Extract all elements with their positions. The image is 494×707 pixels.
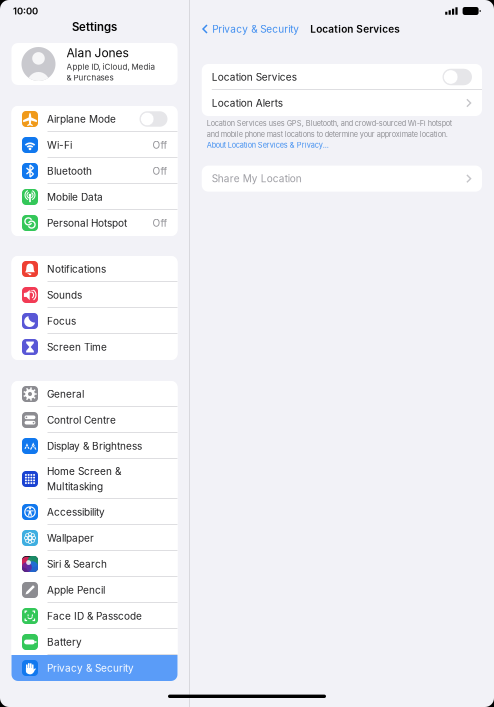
button[interactable]: Wi-Fi [11,132,177,158]
staticText: Display & Brightness [47,440,142,452]
button[interactable]: Privacy & Security [202,22,299,36]
staticText: Airplane Mode [47,113,116,125]
staticText: Control Centre [47,414,116,426]
button[interactable]: Sounds [11,282,177,308]
button[interactable]: Home Screen & [11,459,177,499]
staticText: Privacy & Security [212,23,299,35]
button[interactable]: Siri & Search [11,551,177,577]
button[interactable]: Battery [11,629,177,655]
staticText: Share My Location [212,173,302,185]
staticText: Notifications [47,263,106,275]
button[interactable]: Screen Time [11,334,177,360]
staticText: Off [152,217,167,229]
staticText: Location Alerts [212,97,283,109]
staticText: Mobile Data [47,191,103,203]
staticText: Apple Pencil [47,584,105,596]
staticText: Face ID & Passcode [47,610,142,622]
button[interactable]: Notifications [11,256,177,282]
button[interactable]: Wallpaper [11,525,177,551]
staticText: Focus [47,315,76,327]
staticText: Alan Jones [66,46,128,60]
button[interactable]: Bluetooth [11,158,177,184]
staticText: General [47,388,84,400]
staticText: Apple ID, iCloud, Media [66,62,154,72]
button[interactable]: Display & Brightness [11,433,177,459]
staticText: Sounds [47,289,82,301]
staticText: Wi-Fi [47,139,72,151]
staticText: Bluetooth [47,165,92,177]
staticText: Screen Time [47,341,107,353]
button[interactable]: General [11,381,177,407]
staticText: Wallpaper [47,532,94,544]
staticText: Personal Hotspot [47,217,127,229]
button[interactable]: Airplane Mode [11,106,177,132]
staticText: 10:00 [13,5,38,17]
button[interactable]: Share My Location [202,166,482,192]
button[interactable]: About Location Services & Privacy... [207,141,329,150]
staticText: About Location Services & Privacy... [207,141,329,150]
button[interactable]: Face ID & Passcode [11,603,177,629]
staticText: Privacy & Security [47,662,134,674]
staticText: Location Services [310,23,399,35]
staticText: Accessibility [47,506,105,518]
staticText: Multitasking [47,480,103,493]
button[interactable]: Control Centre [11,407,177,433]
staticText: Siri & Search [47,558,107,570]
button[interactable]: Apple Pencil [11,577,177,603]
button[interactable]: Location Alerts [202,90,482,116]
staticText: Battery [47,636,82,648]
button[interactable]: Personal Hotspot [11,210,177,236]
staticText: Location Services uses GPS, Bluetooth, a… [207,119,452,128]
staticText: Off [152,165,167,177]
button[interactable]: Location Services [202,64,482,90]
button[interactable]: Privacy & Security [11,655,177,681]
button[interactable]: Alan Jones [11,43,177,85]
button[interactable]: Mobile Data [11,184,177,210]
staticText: Off [152,139,167,151]
staticText: Location Services [212,71,297,83]
button[interactable]: Focus [11,308,177,334]
staticText: & Purchases [66,73,113,82]
staticText: Home Screen & [47,465,121,477]
staticText: and mobile phone mast locations to deter… [207,130,448,139]
button[interactable]: Accessibility [11,499,177,525]
staticText: Settings [72,20,117,34]
